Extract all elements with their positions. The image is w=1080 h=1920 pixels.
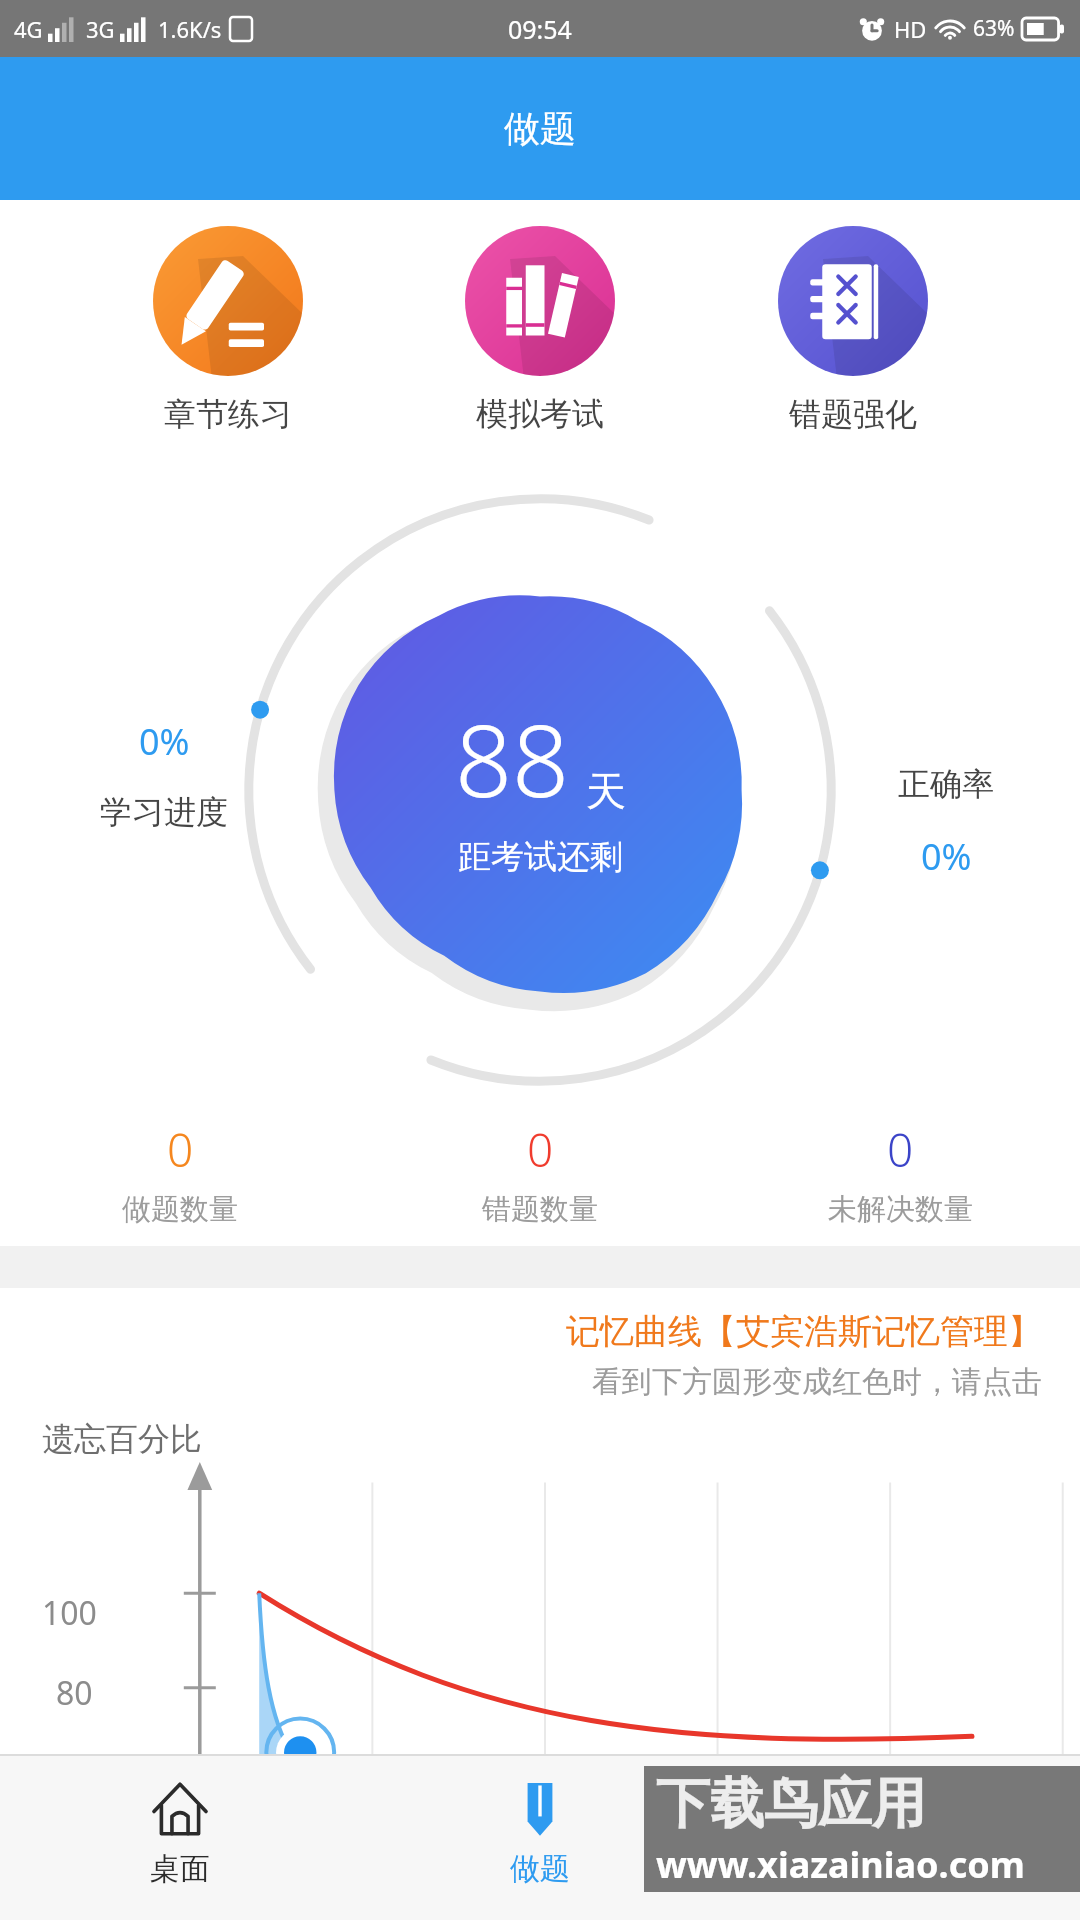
button[interactable]: 章节练习	[143, 220, 313, 440]
staticText: 100	[42, 1591, 97, 1635]
staticText: 下载鸟应用	[656, 1770, 926, 1838]
staticText: 63%	[973, 14, 1015, 43]
staticText: 1.6K/s	[158, 14, 222, 44]
staticText: 距考试还剩	[458, 836, 623, 878]
staticText: 笔记	[870, 1850, 930, 1888]
button[interactable]: 做题	[360, 1754, 720, 1920]
staticText: 错题数量	[482, 1191, 598, 1228]
staticText: 模拟考试	[476, 394, 604, 434]
button[interactable]: 模拟考试	[455, 220, 625, 440]
staticText: 0%	[921, 832, 972, 881]
staticText: 正确率	[898, 764, 994, 804]
staticText: 4G	[14, 14, 43, 44]
staticText: 天	[586, 766, 626, 816]
button[interactable]: 0	[0, 1110, 360, 1236]
staticText: 桌面	[150, 1850, 210, 1888]
button[interactable]: 错题强化	[768, 220, 938, 440]
staticText: 错题强化	[789, 394, 917, 434]
staticText: 看到下方圆形变成红色时，请点击	[592, 1363, 1042, 1401]
staticText: 09:54	[508, 12, 572, 46]
staticText: 做题	[510, 1850, 570, 1888]
staticText: 0	[887, 1118, 914, 1181]
staticText: 遗忘百分比	[42, 1419, 202, 1459]
staticText: www.xiazainiao.com	[656, 1840, 1025, 1889]
staticText: HD	[894, 14, 927, 44]
staticText: 3G	[86, 14, 115, 44]
staticText: 0	[167, 1118, 194, 1181]
button[interactable]: 笔记	[720, 1754, 1080, 1920]
staticText: 学习进度	[100, 792, 228, 832]
staticText: 记忆曲线【艾宾浩斯记忆管理】	[566, 1310, 1042, 1353]
staticText: 做题数量	[122, 1191, 238, 1228]
button[interactable]: 桌面	[0, 1754, 360, 1920]
staticText: 80	[56, 1671, 93, 1715]
staticText: 88	[455, 690, 570, 826]
staticText: 0	[527, 1118, 554, 1181]
staticText: 章节练习	[164, 394, 292, 434]
staticText: 0%	[139, 717, 190, 766]
button[interactable]: 0	[360, 1110, 720, 1236]
button[interactable]: 0	[720, 1110, 1080, 1236]
staticText: 未解决数量	[828, 1191, 973, 1228]
staticText: 做题	[504, 106, 576, 151]
